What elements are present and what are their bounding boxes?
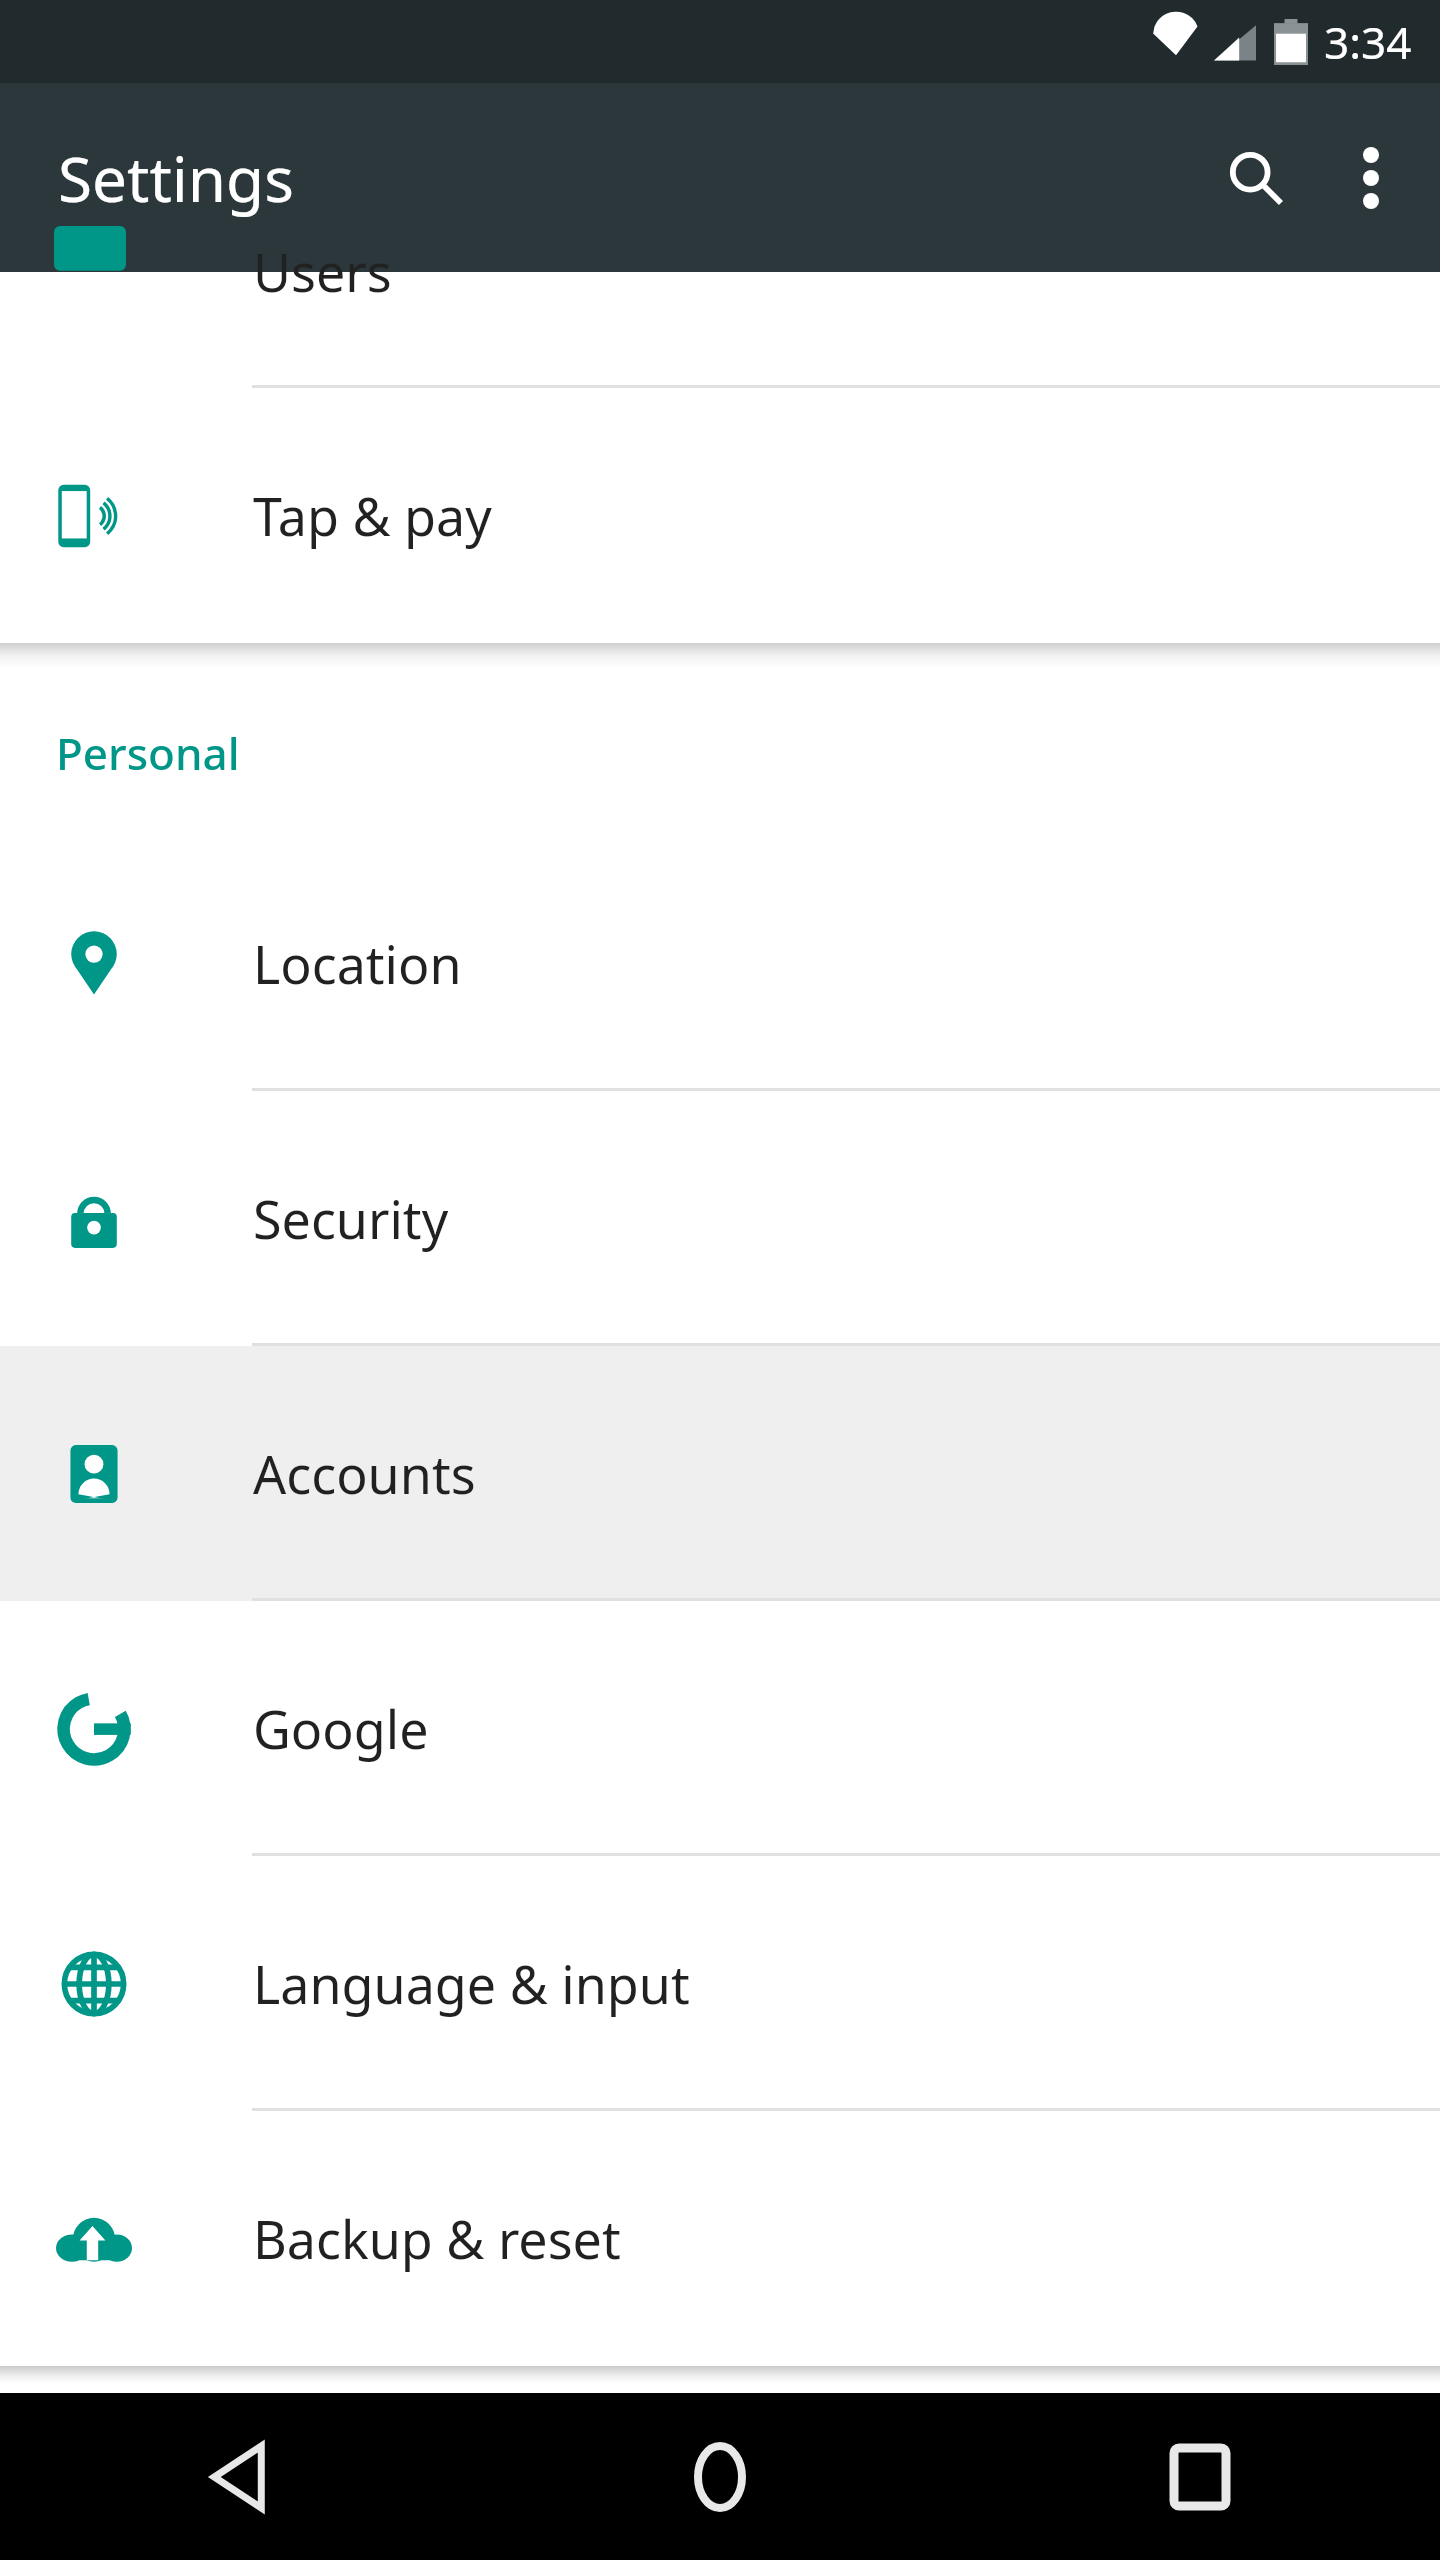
staticText: 3:34	[1324, 12, 1412, 72]
staticText: Tap & pay	[253, 480, 492, 551]
button[interactable]: Google	[0, 1601, 1440, 1856]
button[interactable]: Back	[165, 2402, 315, 2552]
staticText: Backup & reset	[253, 2203, 621, 2274]
staticText: Users	[253, 236, 392, 307]
staticText: Personal	[56, 723, 240, 783]
button[interactable]: Security	[0, 1091, 1440, 1346]
staticText: Location	[253, 928, 462, 999]
staticText: Google	[253, 1693, 429, 1764]
staticText: Security	[253, 1183, 449, 1254]
button[interactable]: Users	[0, 272, 1440, 388]
button[interactable]: Accounts	[0, 1346, 1440, 1601]
button[interactable]: More options	[1316, 123, 1426, 233]
button[interactable]: Search	[1196, 118, 1316, 238]
button[interactable]: Location	[0, 836, 1440, 1091]
button[interactable]: Home	[645, 2402, 795, 2552]
button[interactable]: Language & input	[0, 1856, 1440, 2111]
staticText: Settings	[58, 136, 294, 220]
button[interactable]: Recent apps	[1125, 2402, 1275, 2552]
button[interactable]: Tap & pay	[0, 388, 1440, 643]
staticText: Language & input	[253, 1948, 690, 2019]
button[interactable]: Backup & reset	[0, 2111, 1440, 2366]
staticText: Accounts	[253, 1438, 476, 1509]
